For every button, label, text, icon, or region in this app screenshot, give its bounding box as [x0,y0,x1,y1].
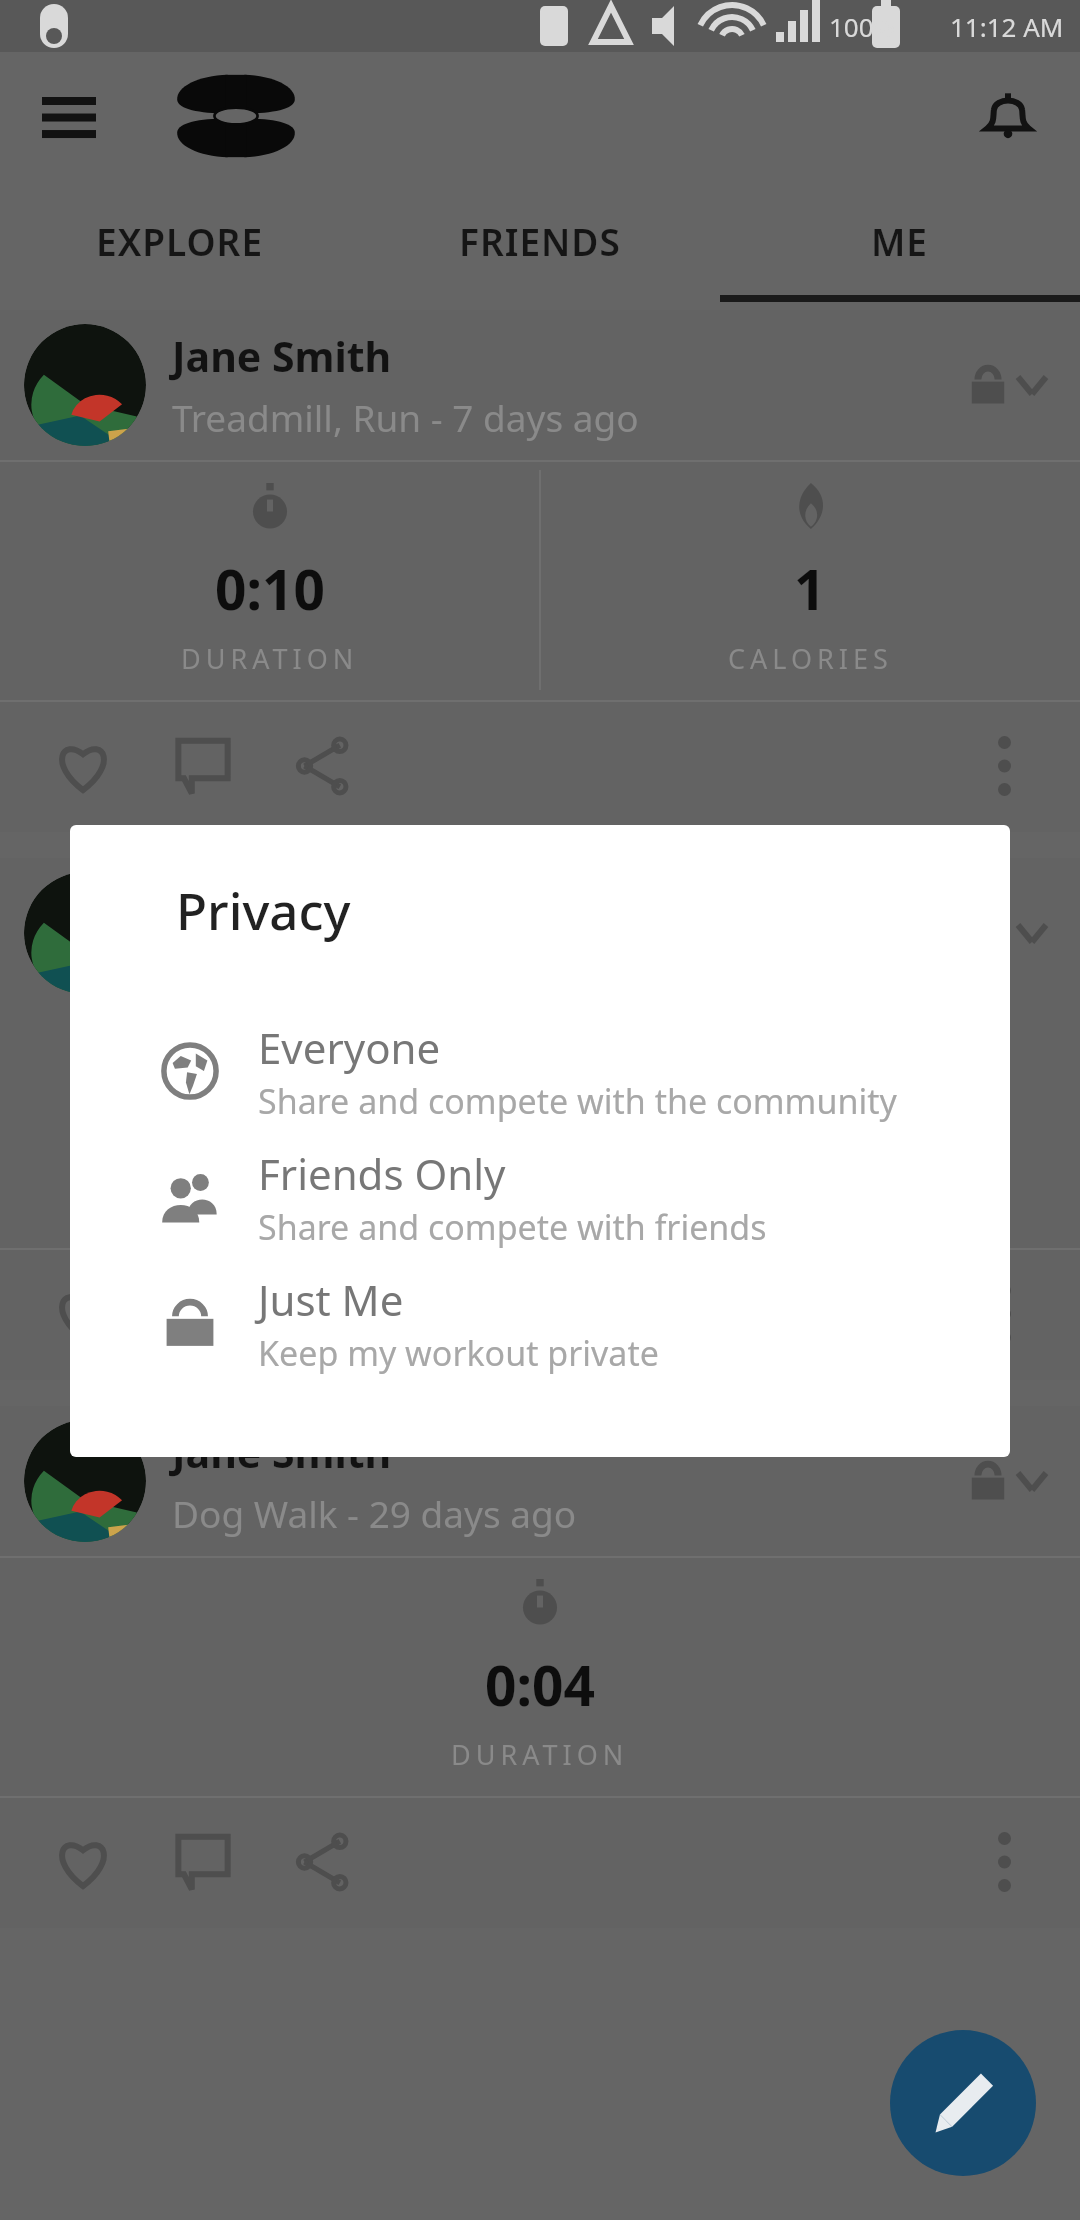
staticText: Share and compete with friends [258,1204,767,1250]
button[interactable]: Like [40,1271,126,1357]
staticText: Share and compete with the community [258,1078,897,1124]
staticText: EXPLORE [96,216,264,266]
staticText: Dog Walk - 29 days ago [172,1488,577,1538]
staticText: Just Me [258,1271,404,1328]
staticText: Jane Smith [172,328,392,384]
staticText: Treadmill, Run - 7 days ago [172,392,639,442]
staticText: CALORIES [728,640,893,677]
staticText: 0:10 [215,551,325,626]
staticText: 11:12 AM [950,9,1064,44]
staticText: DURATION [451,1736,629,1773]
staticText: Bike Ride - 14 days ago [172,940,571,990]
staticText: FRIENDS [459,216,621,266]
staticText: Privacy [176,875,351,944]
button[interactable]: Privacy setting [970,912,1046,954]
button[interactable]: Everyone [70,1008,1010,1134]
button[interactable]: Menu [34,81,104,151]
button[interactable]: Jane Smith [0,858,1080,1008]
button[interactable]: Share [280,1819,366,1905]
button[interactable]: Like [40,723,126,809]
staticText: Jane Smith [172,876,392,932]
button[interactable]: Log a workout [890,2030,1036,2176]
button[interactable]: Comment [160,723,246,809]
button[interactable]: Privacy setting [970,364,1046,406]
button[interactable]: Just Me [70,1260,1010,1386]
staticText: Everyone [258,1019,441,1076]
button[interactable]: Jane Smith [0,310,1080,460]
staticText: Friends Only [258,1145,506,1202]
button[interactable]: Jane Smith [0,1406,1080,1556]
button[interactable]: More options [964,1822,1044,1902]
button[interactable]: Like [40,1819,126,1905]
staticText: ME [871,216,929,266]
button[interactable]: More options [964,726,1044,806]
button[interactable]: Notifications [972,80,1044,152]
button[interactable]: FRIENDS [360,180,720,302]
button[interactable]: Friends Only [70,1134,1010,1260]
button[interactable]: EXPLORE [0,180,360,302]
button[interactable]: Share [280,723,366,809]
staticText: 0:04 [485,1647,595,1722]
staticText: Jane Smith [172,1424,392,1480]
button[interactable]: More options [964,1274,1044,1354]
button[interactable]: Privacy setting [970,1460,1046,1502]
button[interactable]: Share [280,1271,366,1357]
button[interactable]: Comment [160,1271,246,1357]
button[interactable]: ME [720,180,1080,302]
staticText: 100% [829,9,896,44]
button[interactable]: Comment [160,1819,246,1905]
staticText: DURATION [181,640,359,677]
staticText: Keep my workout private [258,1330,659,1376]
staticText: 1 [794,551,826,626]
